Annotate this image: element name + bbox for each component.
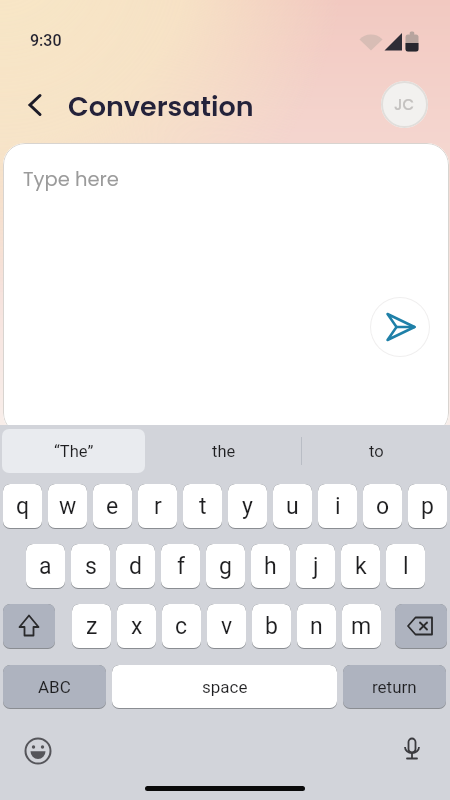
button[interactable]: j	[296, 544, 335, 589]
staticText: return	[372, 677, 417, 697]
button[interactable]: l	[386, 544, 425, 589]
button[interactable]	[395, 604, 447, 649]
staticText: i	[335, 493, 341, 520]
button[interactable]	[396, 735, 428, 767]
staticText: r	[154, 493, 162, 520]
staticText: j	[313, 553, 319, 580]
button[interactable]: v	[207, 604, 246, 649]
staticText: b	[265, 613, 278, 640]
button[interactable]: JC	[381, 81, 428, 128]
button[interactable]: u	[273, 484, 312, 529]
staticText: w	[59, 493, 77, 520]
button[interactable]: Type here	[3, 143, 449, 435]
staticText: Conversation	[68, 88, 254, 126]
staticText: 9:30	[30, 31, 62, 50]
button[interactable]: z	[72, 604, 111, 649]
button[interactable]	[20, 90, 50, 120]
button[interactable]: to	[302, 429, 450, 473]
staticText: c	[175, 613, 188, 640]
button[interactable]: the	[148, 429, 300, 473]
button[interactable]: d	[116, 544, 155, 589]
staticText: v	[221, 613, 233, 640]
staticText: JC	[394, 94, 415, 115]
staticText: q	[16, 493, 30, 520]
button[interactable]: y	[228, 484, 267, 529]
button[interactable]: p	[408, 484, 447, 529]
button[interactable]: s	[71, 544, 110, 589]
button[interactable]: w	[48, 484, 87, 529]
button[interactable]: “The”	[2, 429, 145, 473]
staticText: space	[202, 677, 248, 697]
button[interactable]: f	[161, 544, 200, 589]
button[interactable]: c	[162, 604, 201, 649]
button[interactable]: return	[343, 665, 446, 709]
button[interactable]: b	[252, 604, 291, 649]
staticText: o	[376, 493, 390, 520]
button[interactable]: m	[342, 604, 381, 649]
staticText: to	[369, 442, 384, 461]
staticText: Type here	[23, 166, 119, 193]
staticText: n	[310, 613, 323, 640]
staticText: t	[199, 493, 207, 520]
staticText: u	[286, 493, 299, 520]
staticText: s	[85, 553, 97, 580]
button[interactable]	[22, 735, 54, 767]
button[interactable]: ABC	[3, 665, 106, 709]
button[interactable]: a	[26, 544, 65, 589]
staticText: x	[131, 613, 143, 640]
staticText: k	[355, 553, 367, 580]
staticText: l	[403, 553, 409, 580]
staticText: m	[351, 613, 372, 640]
button[interactable]: x	[117, 604, 156, 649]
button[interactable]: i	[318, 484, 357, 529]
staticText: g	[219, 553, 232, 580]
button[interactable]: e	[93, 484, 132, 529]
button[interactable]: k	[341, 544, 380, 589]
button[interactable]: h	[251, 544, 290, 589]
staticText: h	[264, 553, 277, 580]
button[interactable]: g	[206, 544, 245, 589]
button[interactable]	[371, 298, 429, 356]
button[interactable]	[3, 604, 55, 649]
staticText: z	[86, 613, 98, 640]
button[interactable]: t	[183, 484, 222, 529]
button[interactable]: n	[297, 604, 336, 649]
button[interactable]: q	[3, 484, 42, 529]
staticText: y	[242, 493, 253, 520]
button[interactable]: r	[138, 484, 177, 529]
staticText: d	[129, 553, 142, 580]
button[interactable]: space	[112, 665, 337, 709]
staticText: ABC	[38, 677, 71, 697]
staticText: p	[421, 493, 434, 520]
staticText: e	[106, 493, 119, 520]
staticText: f	[177, 553, 185, 580]
button[interactable]: o	[363, 484, 402, 529]
staticText: a	[39, 553, 52, 580]
staticText: the	[212, 442, 236, 461]
staticText: “The”	[54, 442, 94, 461]
